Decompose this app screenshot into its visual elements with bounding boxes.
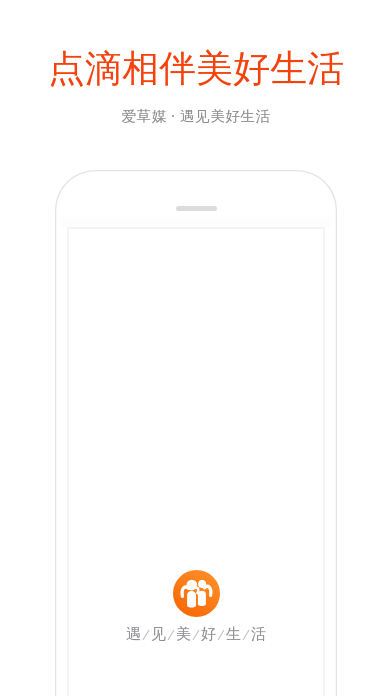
staticText: 美 [176, 625, 191, 644]
staticText: 爱草媒 · 遇见美好生活 [121, 105, 271, 125]
button[interactable]: 爱草媒 app logo [173, 570, 220, 617]
staticText: 生 [226, 625, 241, 644]
staticText: 活 [251, 625, 266, 644]
staticText: 点滴相伴美好生活 [48, 45, 344, 92]
staticText: 遇 [126, 625, 141, 644]
staticText: 见 [151, 625, 166, 644]
staticText: 好 [201, 625, 216, 644]
